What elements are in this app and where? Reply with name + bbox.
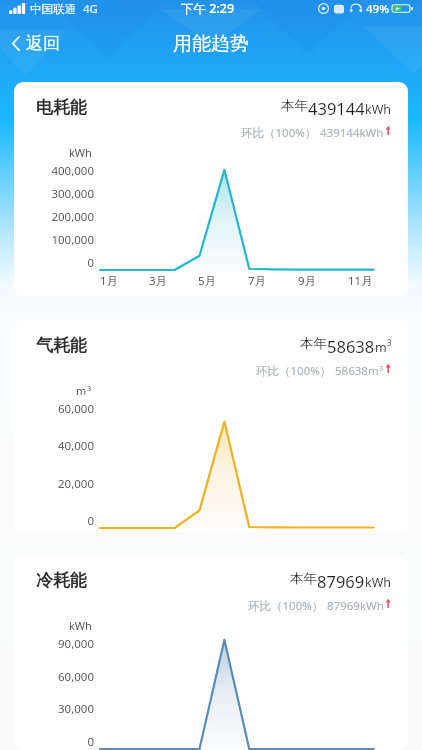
staticText: 本年 [300,335,327,352]
staticText: 0 [87,734,94,750]
staticText: 本年 [281,97,308,114]
staticText: kWh [365,574,392,591]
button[interactable]: 冷耗能 [14,555,408,750]
staticText: kWh [365,101,392,118]
staticText: 本年 [290,570,317,587]
staticText: kWh [69,145,92,160]
staticText: 20,000 [58,476,94,492]
staticText: 4G [83,1,98,17]
staticText: 环比（100%） [248,598,324,614]
staticText: 60,000 [58,401,94,417]
staticText: 87969 [317,570,365,592]
staticText: 200,000 [51,209,94,225]
staticText: 气耗能 [36,335,87,356]
staticText: 0 [87,513,94,529]
staticText: 5月 [198,273,217,289]
staticText: 87969kWh [327,598,384,614]
staticText: 中国联通 [30,2,76,16]
staticText: 7月 [248,273,267,289]
staticText: 400,000 [51,163,94,179]
staticText: 58638m [335,363,379,379]
staticText: 返回 [26,33,60,54]
staticText: 40,000 [58,438,94,454]
button[interactable]: 电耗能 [14,82,408,297]
staticText: 49% [366,1,389,17]
staticText: kWh [69,618,92,633]
staticText: 环比（100%） [256,363,332,379]
staticText: 3 [379,363,384,373]
staticText: 用能趋势 [173,32,249,56]
staticText: 439144kWh [320,125,384,141]
staticText: 冷耗能 [36,570,87,591]
staticText: 下午 2:29 [181,0,235,17]
staticText: 58638 [327,335,375,357]
staticText: m [375,339,387,356]
button[interactable]: 气耗能 [14,320,408,532]
staticText: 3月 [149,273,168,289]
staticText: 300,000 [51,186,94,202]
staticText: 1月 [100,273,119,289]
staticText: 3 [87,383,92,393]
staticText: 9月 [298,273,317,289]
staticText: 环比（100%） [241,125,317,141]
staticText: 电耗能 [36,97,87,118]
staticText: 3 [387,337,392,348]
staticText: 30,000 [58,701,94,717]
staticText: 439144 [308,97,365,119]
staticText: 11月 [348,273,373,289]
staticText: 0 [87,255,94,271]
button[interactable]: 返回 [0,27,74,60]
staticText: m [76,383,87,398]
staticText: 100,000 [51,232,94,248]
staticText: 60,000 [58,669,94,685]
staticText: 90,000 [58,636,94,652]
